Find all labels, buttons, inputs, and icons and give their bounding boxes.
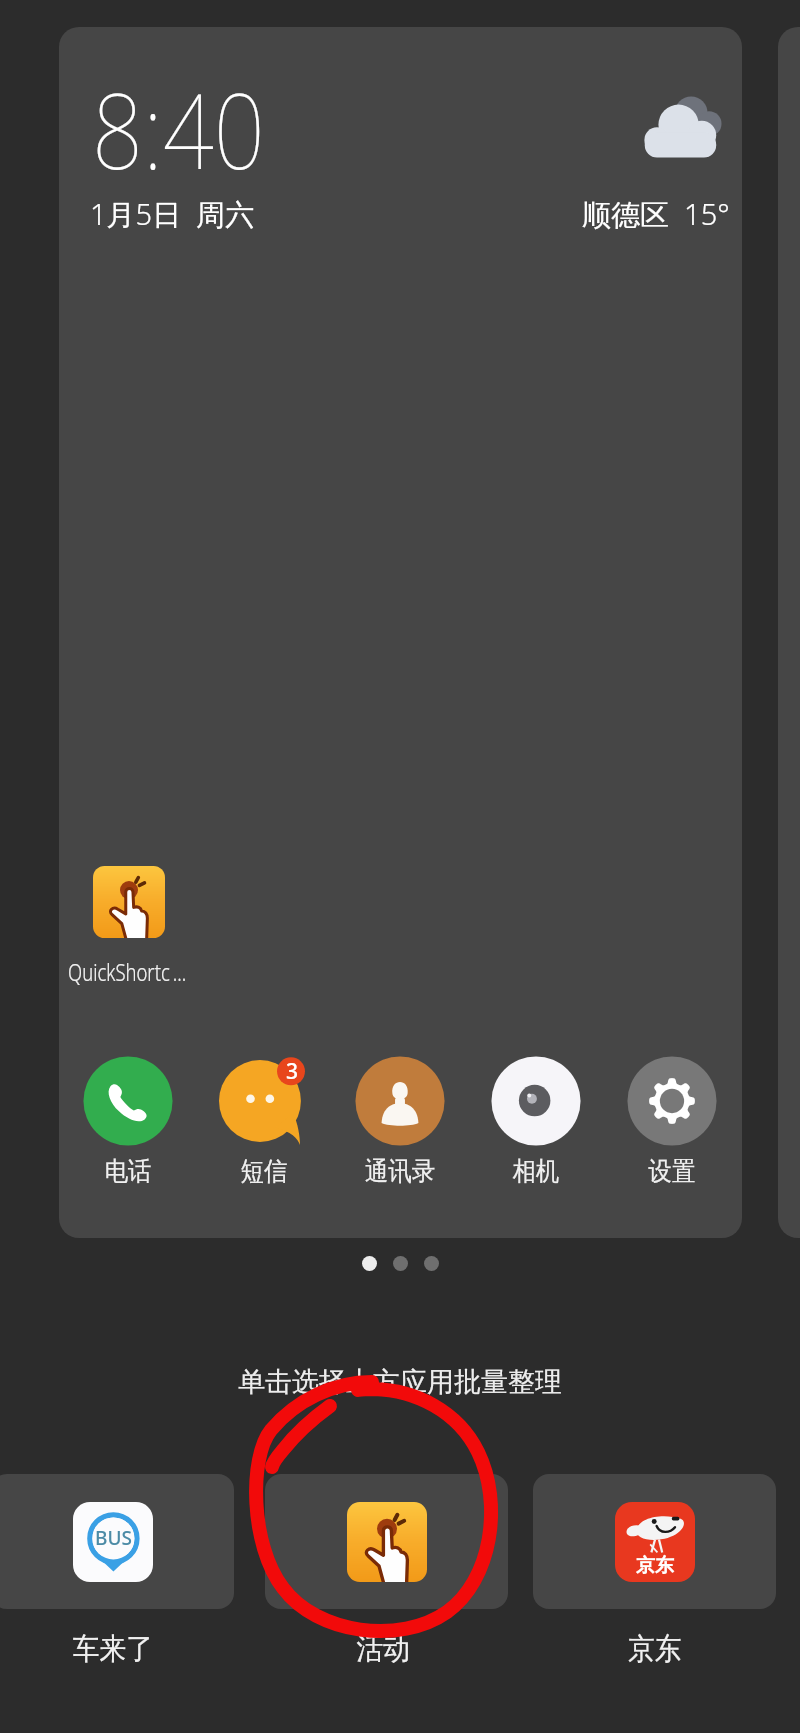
staticText: 相机 [513, 1155, 559, 1188]
button[interactable]: 设置 [627, 1056, 717, 1188]
button[interactable]: 电话 [83, 1056, 173, 1188]
button[interactable]: 相机 [491, 1056, 581, 1188]
button[interactable]: BUS [0, 1474, 234, 1609]
staticText: 京东 [636, 1554, 674, 1578]
staticText: 活动 [356, 1630, 410, 1668]
button[interactable]: 京东 [533, 1474, 776, 1609]
staticText: 设置 [649, 1155, 695, 1188]
button[interactable]: 8:40 [59, 27, 742, 1238]
staticText: 通讯录 [365, 1155, 435, 1188]
staticText: 京东 [628, 1630, 682, 1668]
staticText: QuickShortc … [68, 955, 187, 988]
button[interactable]: 通讯录 [355, 1056, 445, 1188]
staticText: 电话 [105, 1155, 151, 1188]
staticText: 3 [286, 1057, 299, 1086]
button[interactable]: QuickShortcutMaker [93, 866, 165, 938]
staticText: 顺德区 15° [582, 194, 730, 234]
staticText: 车来了 [73, 1630, 153, 1668]
staticText: 8:40 [92, 58, 265, 200]
staticText: 1月5日 周六 [90, 194, 255, 234]
staticText: 短信 [241, 1155, 287, 1188]
staticText: BUS [95, 1525, 132, 1551]
button[interactable] [265, 1474, 508, 1609]
staticText: 单击选择上方应用批量整理 [238, 1365, 562, 1399]
button[interactable]: 3 [219, 1056, 309, 1188]
